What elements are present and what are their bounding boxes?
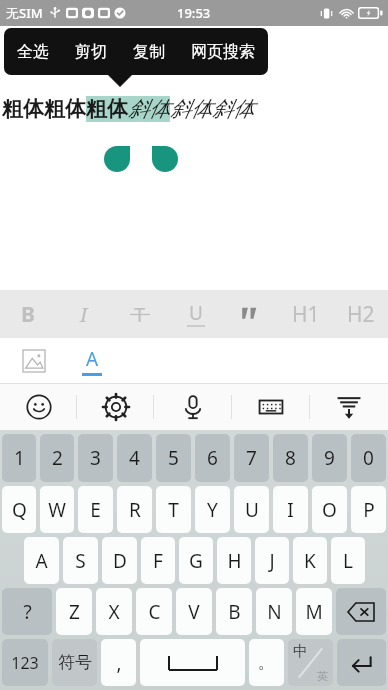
staticText: R	[129, 497, 141, 523]
button[interactable]: O	[312, 486, 347, 533]
button[interactable]: 6	[195, 434, 230, 482]
button[interactable]: 复制	[120, 32, 178, 72]
button[interactable]: Y	[195, 486, 230, 533]
button[interactable]: L	[331, 537, 365, 584]
button[interactable]: X	[96, 588, 132, 635]
button[interactable]: T	[156, 486, 191, 533]
staticText: S	[75, 548, 86, 574]
staticText: F	[153, 548, 163, 574]
button[interactable]: P	[351, 486, 386, 533]
button[interactable]: Settings	[77, 384, 154, 430]
staticText: I	[80, 301, 88, 328]
button[interactable]: Voice input	[154, 384, 232, 430]
button[interactable]: Insert image	[14, 341, 54, 381]
staticText: B	[21, 300, 35, 329]
button[interactable]: 剪切	[62, 32, 120, 72]
button[interactable]: W	[40, 486, 74, 533]
staticText: ?	[23, 599, 32, 625]
button[interactable]: C	[136, 588, 172, 635]
button[interactable]: Emoji	[0, 384, 77, 430]
staticText: 网页搜索	[191, 42, 255, 62]
button[interactable]: 4	[117, 434, 152, 482]
button[interactable]: U	[168, 290, 223, 338]
button[interactable]: B	[0, 290, 56, 338]
button[interactable]: Hide keyboard	[310, 384, 388, 430]
button[interactable]: S	[63, 537, 98, 584]
button[interactable]: 3	[78, 434, 113, 482]
button[interactable]: 全选	[4, 32, 62, 72]
staticText: L	[343, 548, 353, 574]
staticText: 中	[293, 642, 308, 661]
staticText: 粗体粗体	[2, 96, 86, 122]
button[interactable]: 9	[312, 434, 347, 482]
staticText: A	[86, 346, 99, 372]
staticText: G	[189, 548, 203, 574]
staticText: 全选	[17, 42, 49, 62]
button[interactable]: H1	[278, 290, 333, 338]
button[interactable]: 123	[2, 639, 48, 686]
button[interactable]: 0	[351, 434, 386, 482]
staticText: Z	[69, 599, 80, 625]
button[interactable]: A	[24, 537, 59, 584]
button[interactable]: E	[78, 486, 113, 533]
button[interactable]: U	[234, 486, 269, 533]
staticText: Q	[12, 497, 27, 523]
button[interactable]: N	[256, 588, 292, 635]
staticText: U	[189, 300, 203, 326]
button[interactable]: T	[112, 290, 168, 338]
button[interactable]: Backspace	[336, 588, 386, 635]
staticText: I	[287, 497, 294, 523]
button[interactable]: ?	[2, 588, 52, 635]
staticText: X	[108, 599, 120, 625]
button[interactable]: 5	[156, 434, 191, 482]
button[interactable]: 。	[249, 639, 284, 686]
button[interactable]: 符号	[52, 639, 97, 686]
staticText: D	[113, 548, 127, 574]
button[interactable]: 7	[234, 434, 269, 482]
button[interactable]: Text color	[72, 341, 112, 381]
staticText: 3	[90, 445, 101, 471]
staticText: 123	[11, 652, 39, 674]
staticText: 8	[285, 445, 296, 471]
staticText: ,	[116, 650, 122, 676]
staticText: 斜体斜体	[170, 96, 254, 122]
button[interactable]: J	[255, 537, 289, 584]
button[interactable]: G	[179, 537, 213, 584]
staticText: T	[134, 301, 146, 328]
button[interactable]: I	[273, 486, 308, 533]
button[interactable]: I	[56, 290, 112, 338]
staticText: 复制	[133, 42, 165, 62]
button[interactable]: Keyboard	[232, 384, 310, 430]
staticText: H2	[347, 300, 375, 329]
button[interactable]: H	[217, 537, 251, 584]
button[interactable]: V	[176, 588, 212, 635]
button[interactable]: M	[296, 588, 332, 635]
staticText: A	[35, 548, 48, 574]
staticText: M	[305, 599, 323, 625]
button[interactable]: 2	[40, 434, 74, 482]
button[interactable]: K	[293, 537, 327, 584]
button[interactable]: B	[216, 588, 252, 635]
button[interactable]: F	[141, 537, 175, 584]
staticText: H	[227, 548, 242, 574]
button[interactable]: 网页搜索	[178, 32, 268, 72]
button[interactable]: Q	[2, 486, 36, 533]
staticText: 4	[129, 445, 140, 471]
button[interactable]: D	[102, 537, 137, 584]
button[interactable]: Enter	[337, 639, 386, 686]
button[interactable]: Q	[223, 290, 278, 338]
staticText: N	[267, 599, 282, 625]
button[interactable]: Chinese English toggle	[288, 639, 333, 686]
staticText: 粗体	[86, 96, 128, 122]
staticText: B	[228, 599, 241, 625]
staticText: K	[304, 548, 316, 574]
staticText: 1	[14, 445, 25, 471]
button[interactable]: ,	[101, 639, 136, 686]
button[interactable]: H2	[333, 290, 388, 338]
button[interactable]: Space	[140, 639, 245, 686]
button[interactable]: Z	[56, 588, 92, 635]
button[interactable]: R	[117, 486, 152, 533]
button[interactable]: 8	[273, 434, 308, 482]
staticText: 6	[207, 445, 218, 471]
button[interactable]: 1	[2, 434, 36, 482]
